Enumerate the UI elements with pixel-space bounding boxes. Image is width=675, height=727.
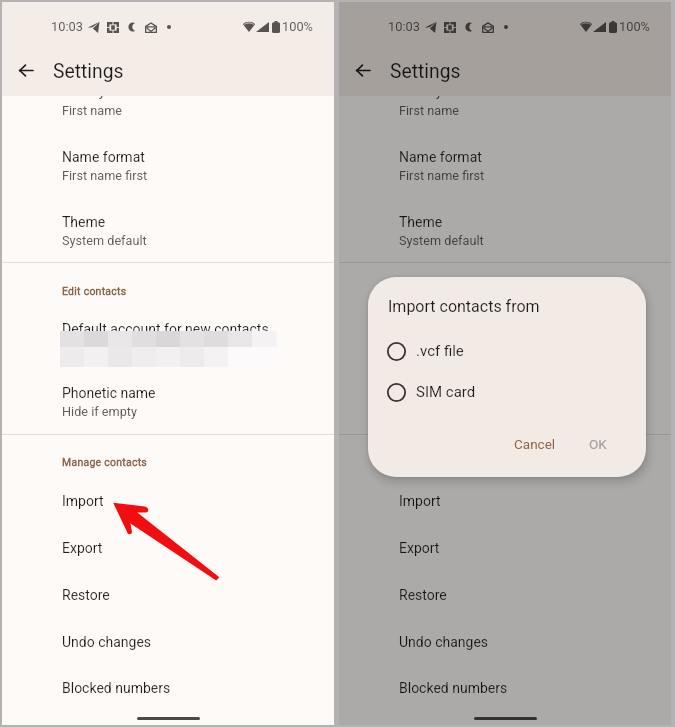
staticText: Phonetic name bbox=[399, 385, 493, 401]
staticText: Phonetic name bbox=[62, 385, 156, 401]
staticText: Undo changes bbox=[62, 634, 152, 650]
staticText: First name bbox=[62, 103, 123, 118]
staticText: First name first bbox=[62, 168, 148, 183]
button[interactable]: SIM card bbox=[368, 375, 646, 409]
button[interactable]: Cancel bbox=[507, 429, 563, 459]
button[interactable]: OK bbox=[581, 429, 615, 459]
staticText: OK bbox=[589, 436, 607, 452]
button[interactable] bbox=[339, 665, 671, 707]
staticText: Import bbox=[62, 493, 104, 509]
staticText: Theme bbox=[62, 214, 106, 230]
staticText: Hide if empty bbox=[62, 404, 137, 419]
button[interactable] bbox=[2, 370, 334, 428]
button[interactable] bbox=[339, 478, 671, 520]
staticText: First name first bbox=[399, 168, 485, 183]
staticText: System default bbox=[399, 233, 484, 248]
staticText: .vcf file bbox=[416, 342, 464, 360]
staticText: Settings bbox=[390, 60, 461, 83]
staticText: Default account for new contacts bbox=[62, 321, 269, 337]
staticText: Name format bbox=[62, 149, 145, 165]
staticText: Name format bbox=[399, 149, 482, 165]
button[interactable] bbox=[339, 306, 671, 348]
staticText: Sort by bbox=[62, 83, 106, 99]
staticText: Settings bbox=[53, 60, 124, 83]
button[interactable] bbox=[339, 572, 671, 614]
staticText: 10:03 bbox=[51, 19, 83, 34]
button[interactable] bbox=[2, 665, 334, 707]
button[interactable] bbox=[2, 572, 334, 614]
staticText: Restore bbox=[399, 587, 447, 603]
staticText: First name bbox=[399, 103, 460, 118]
button[interactable] bbox=[339, 619, 671, 661]
button[interactable]: Back bbox=[345, 52, 381, 88]
staticText: Edit contacts bbox=[62, 285, 127, 297]
button[interactable] bbox=[339, 370, 671, 428]
button[interactable] bbox=[2, 619, 334, 661]
staticText: Undo changes bbox=[399, 634, 489, 650]
button[interactable] bbox=[2, 306, 334, 348]
staticText: Export bbox=[399, 540, 440, 556]
staticText: Import contacts from bbox=[388, 297, 540, 316]
staticText: 100% bbox=[619, 19, 650, 34]
button[interactable]: Back bbox=[8, 52, 44, 88]
button[interactable] bbox=[339, 134, 671, 192]
staticText: Export bbox=[62, 540, 103, 556]
staticText: Cancel bbox=[514, 436, 556, 452]
staticText: Blocked numbers bbox=[399, 680, 508, 696]
staticText: SIM card bbox=[416, 383, 476, 401]
staticText: 100% bbox=[282, 19, 313, 34]
staticText: Theme bbox=[399, 214, 443, 230]
button[interactable]: .vcf file bbox=[368, 334, 646, 368]
staticText: Blocked numbers bbox=[62, 680, 171, 696]
button[interactable] bbox=[339, 199, 671, 257]
button[interactable] bbox=[2, 199, 334, 257]
button[interactable] bbox=[2, 478, 334, 520]
staticText: Import bbox=[399, 493, 441, 509]
staticText: Sort by bbox=[399, 83, 443, 99]
staticText: Restore bbox=[62, 587, 110, 603]
staticText: Manage contacts bbox=[62, 456, 147, 468]
staticText: 10:03 bbox=[388, 19, 420, 34]
staticText: System default bbox=[62, 233, 147, 248]
button[interactable] bbox=[2, 525, 334, 567]
button[interactable] bbox=[2, 134, 334, 192]
button[interactable] bbox=[339, 525, 671, 567]
